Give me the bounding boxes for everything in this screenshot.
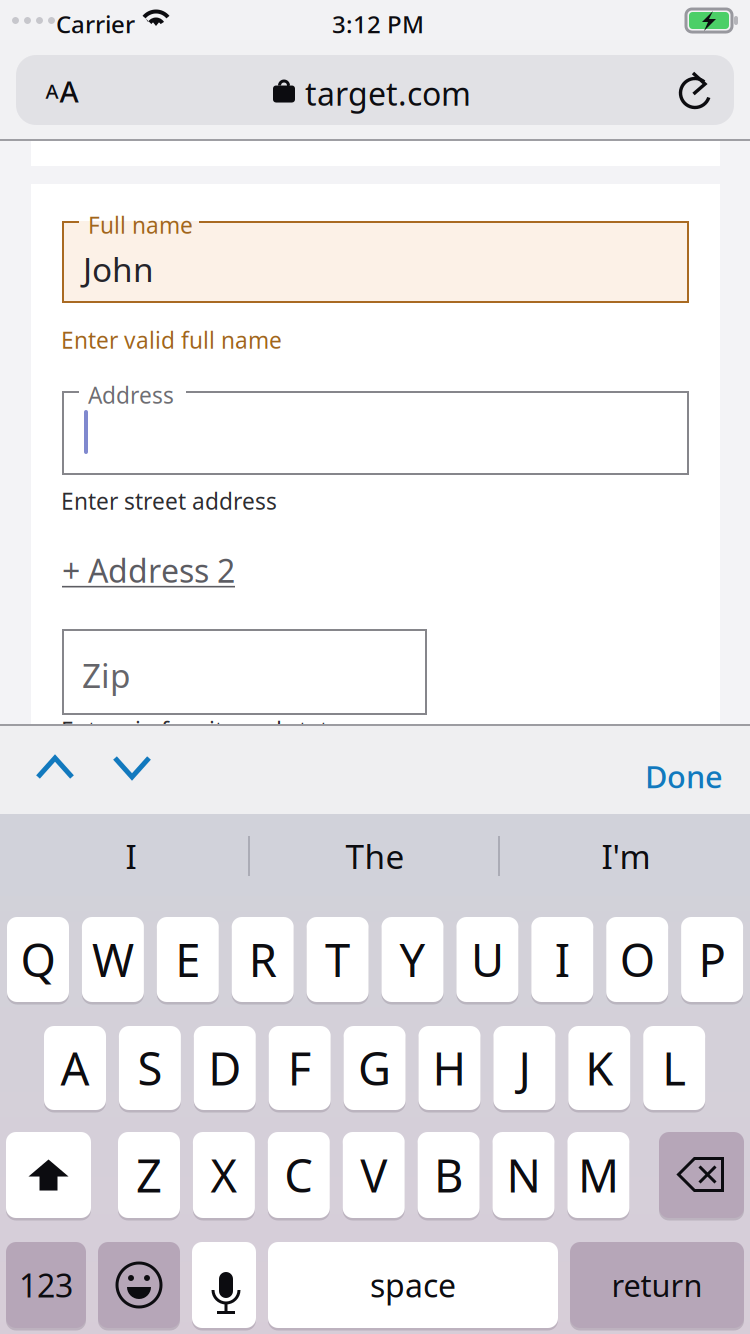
staticText: 123 — [19, 1264, 73, 1306]
staticText: 3:12 PM — [332, 8, 424, 40]
staticText: Done — [645, 756, 723, 797]
button[interactable]: V — [343, 1132, 405, 1218]
button[interactable]: Emoji keyboard — [98, 1242, 180, 1328]
staticText: space — [370, 1264, 456, 1306]
staticText: A — [45, 78, 58, 104]
staticText: X — [210, 1145, 237, 1205]
staticText: E — [175, 929, 200, 990]
staticText: N — [506, 1145, 540, 1205]
staticText: G — [358, 1038, 391, 1098]
staticText: target.com — [305, 72, 471, 114]
button[interactable]: O — [606, 917, 668, 1002]
button[interactable]: E — [157, 917, 219, 1002]
staticText: I'm — [601, 834, 650, 878]
button[interactable]: B — [418, 1132, 480, 1218]
button[interactable]: K — [568, 1026, 630, 1110]
staticText: A — [60, 1038, 89, 1098]
button[interactable]: S — [119, 1026, 181, 1110]
staticText: Enter valid full name — [61, 325, 282, 355]
staticText: I — [555, 929, 570, 990]
staticText: F — [288, 1038, 312, 1098]
button[interactable]: Done — [645, 756, 723, 797]
button[interactable]: I — [119, 836, 143, 876]
button[interactable]: U — [456, 917, 518, 1002]
button[interactable]: Previous field — [36, 755, 74, 780]
button[interactable]: W — [82, 917, 144, 1002]
staticText: V — [360, 1145, 387, 1205]
staticText: S — [137, 1038, 162, 1098]
button[interactable]: I'm — [598, 836, 654, 876]
staticText: Q — [20, 929, 55, 990]
staticText: W — [92, 929, 134, 990]
staticText: O — [620, 929, 655, 990]
staticText: return — [611, 1265, 702, 1305]
button[interactable]: A — [44, 1026, 106, 1110]
button[interactable]: D — [194, 1026, 256, 1110]
button[interactable]: P — [681, 917, 743, 1002]
staticText: Enter street address — [61, 486, 277, 516]
staticText: H — [432, 1038, 466, 1098]
button[interactable]: C — [268, 1132, 330, 1218]
staticText: J — [518, 1038, 530, 1098]
button[interactable]: 123 — [6, 1242, 86, 1328]
staticText: Full name — [88, 210, 193, 240]
staticText: The — [345, 834, 404, 878]
staticText: U — [471, 929, 504, 990]
button[interactable]: L — [643, 1026, 705, 1110]
staticText: T — [325, 929, 350, 990]
staticText: B — [434, 1145, 463, 1205]
staticText: D — [208, 1038, 241, 1098]
staticText: John — [83, 247, 154, 291]
staticText: L — [662, 1038, 686, 1098]
button[interactable]: X — [193, 1132, 255, 1218]
button[interactable]: T — [307, 917, 369, 1002]
button[interactable]: Y — [381, 917, 443, 1002]
staticText: Carrier — [56, 8, 135, 40]
button[interactable]: Z — [118, 1132, 180, 1218]
button[interactable]: R — [232, 917, 294, 1002]
button[interactable]: Shift — [6, 1132, 91, 1218]
button[interactable]: The — [345, 836, 405, 876]
button[interactable]: Dictation — [192, 1242, 256, 1328]
button[interactable]: Next field — [113, 755, 151, 780]
button[interactable]: + Address 2 — [62, 549, 235, 591]
button[interactable]: J — [493, 1026, 555, 1110]
button[interactable]: return — [570, 1242, 744, 1328]
staticText: R — [249, 929, 277, 990]
staticText: I — [125, 834, 136, 878]
staticText: Enter zip for city and state — [61, 715, 341, 745]
staticText: Address — [88, 380, 174, 410]
button[interactable]: Reload page — [678, 72, 712, 110]
staticText: Y — [399, 929, 425, 990]
button[interactable]: Delete — [659, 1132, 744, 1218]
button[interactable]: I — [531, 917, 593, 1002]
button[interactable]: Text size — [40, 76, 84, 106]
button[interactable]: M — [567, 1132, 629, 1218]
staticText: + Address 2 — [62, 549, 235, 591]
button[interactable]: Q — [7, 917, 69, 1002]
button[interactable]: F — [269, 1026, 331, 1110]
staticText: M — [578, 1145, 619, 1205]
staticText: Zip — [82, 653, 131, 697]
button[interactable]: space — [268, 1242, 558, 1328]
button[interactable]: H — [418, 1026, 480, 1110]
button[interactable]: G — [344, 1026, 406, 1110]
staticText: C — [284, 1145, 313, 1205]
button[interactable]: N — [492, 1132, 554, 1218]
staticText: K — [585, 1038, 613, 1098]
staticText: Z — [136, 1145, 162, 1205]
staticText: P — [699, 929, 726, 990]
staticText: A — [59, 71, 78, 110]
